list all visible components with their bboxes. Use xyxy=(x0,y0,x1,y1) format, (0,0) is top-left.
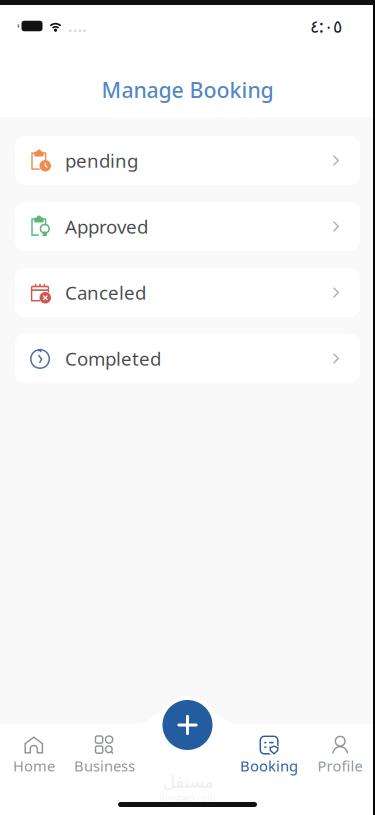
staticText: Approved xyxy=(65,214,148,239)
button[interactable]: Completed xyxy=(15,334,360,383)
button[interactable]: Add booking xyxy=(158,696,216,754)
button[interactable]: Booking xyxy=(233,737,305,775)
staticText: Booking xyxy=(240,756,298,775)
staticText: Business xyxy=(74,756,135,775)
button[interactable]: Home xyxy=(0,737,68,775)
staticText: pending xyxy=(65,148,138,173)
button[interactable]: pending xyxy=(15,136,360,185)
staticText: Home xyxy=(13,756,55,775)
button[interactable]: Canceled xyxy=(15,268,360,317)
button[interactable]: Profile xyxy=(305,737,375,775)
staticText: mostaql.com xyxy=(159,792,216,804)
staticText: ٤:٠٥ xyxy=(310,14,342,37)
staticText: Profile xyxy=(317,756,362,775)
staticText: Canceled xyxy=(65,280,146,305)
button[interactable]: Business xyxy=(68,737,141,775)
button[interactable]: Approved xyxy=(15,202,360,251)
staticText: Manage Booking xyxy=(101,76,273,104)
staticText: Completed xyxy=(65,346,161,371)
staticText: مستقل xyxy=(162,772,213,792)
